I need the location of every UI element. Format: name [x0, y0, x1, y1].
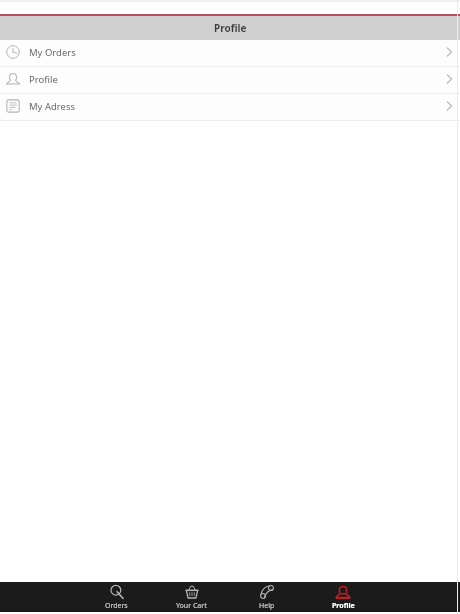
staticText: My Adress: [29, 100, 76, 113]
other: Open: [444, 101, 454, 111]
button[interactable]: Orders: [79, 584, 154, 612]
button[interactable]: Help: [229, 584, 305, 612]
button[interactable]: Your Cart: [154, 584, 229, 612]
button[interactable]: Profile: [0, 67, 460, 93]
staticText: Help: [259, 601, 275, 611]
staticText: Profile: [214, 21, 247, 35]
staticText: Profile: [29, 73, 58, 86]
button[interactable]: Profile: [305, 584, 381, 612]
staticText: Profile: [332, 601, 355, 611]
other: Open: [444, 74, 454, 84]
button[interactable]: My Orders: [0, 40, 460, 66]
staticText: Orders: [105, 601, 128, 611]
staticText: My Orders: [29, 46, 76, 59]
other: Open: [444, 47, 454, 57]
staticText: Your Cart: [176, 601, 207, 611]
button[interactable]: My Adress: [0, 94, 460, 120]
